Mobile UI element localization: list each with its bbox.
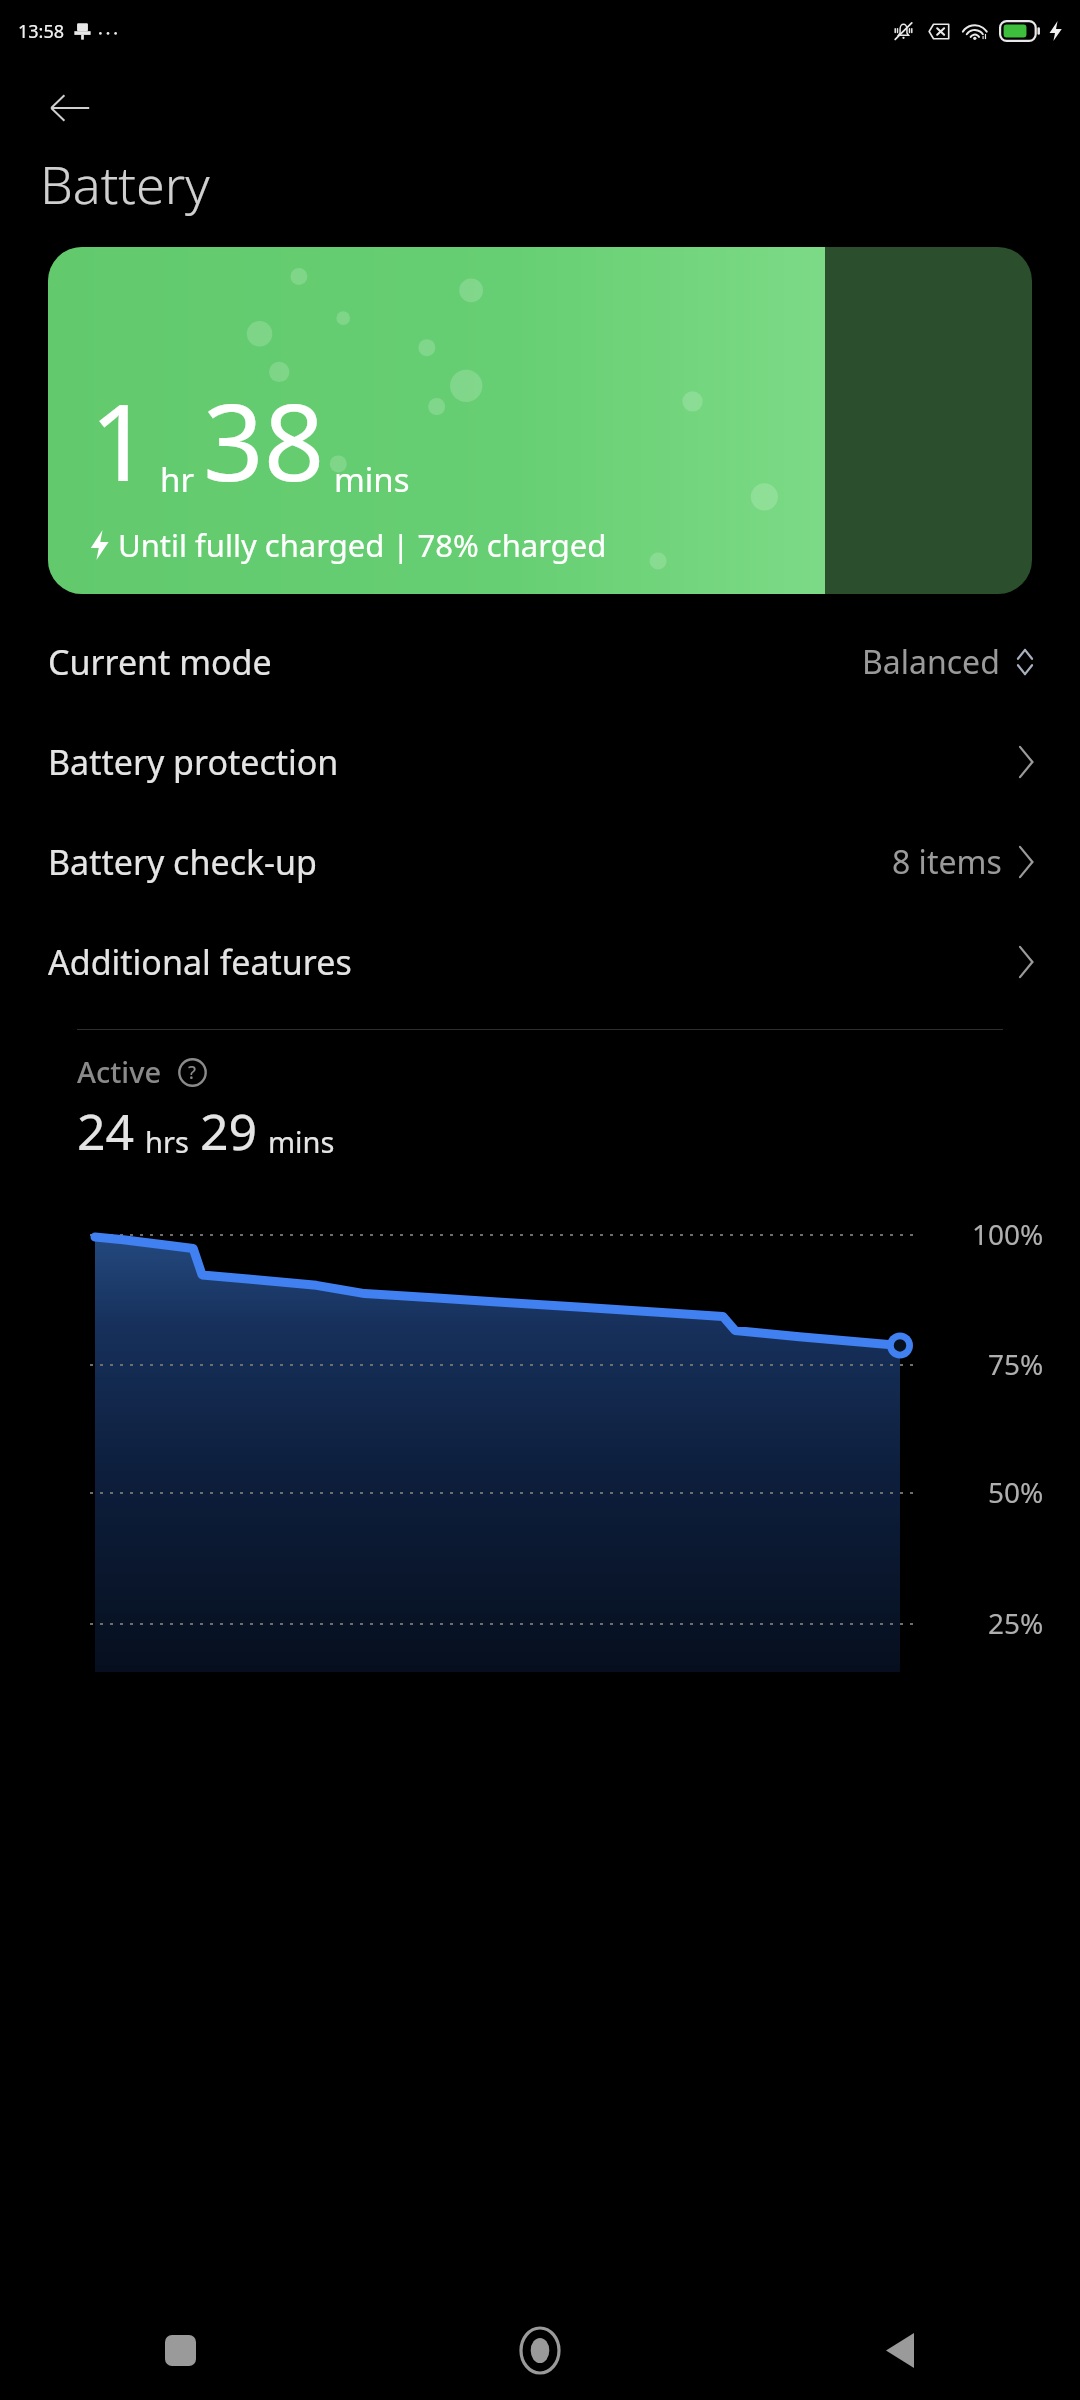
button[interactable]: Back bbox=[38, 76, 102, 140]
staticText: 8 items bbox=[892, 840, 1002, 884]
staticText: Balanced bbox=[862, 640, 1000, 684]
staticText: 29 bbox=[200, 1097, 258, 1165]
staticText: 75% bbox=[988, 1345, 1044, 1383]
staticText: Battery protection bbox=[48, 739, 339, 785]
button[interactable]: Additional features bbox=[0, 912, 1080, 1012]
staticText: mins bbox=[334, 457, 410, 502]
staticText: 50% bbox=[988, 1473, 1044, 1511]
staticText: 38 bbox=[203, 368, 325, 512]
button[interactable]: Back bbox=[720, 2300, 1080, 2400]
staticText: Current mode bbox=[48, 639, 272, 685]
button[interactable]: Current mode bbox=[0, 612, 1080, 712]
button[interactable]: Recent apps bbox=[0, 2300, 360, 2400]
staticText: ? bbox=[188, 1060, 197, 1085]
staticText: Active bbox=[77, 1052, 162, 1091]
staticText: Until fully charged | 78% charged bbox=[118, 524, 607, 566]
staticText: 13:58 bbox=[18, 19, 65, 44]
staticText: Battery bbox=[40, 148, 210, 219]
staticText: 24 bbox=[77, 1097, 135, 1165]
staticText: hrs bbox=[145, 1122, 189, 1161]
staticText: Battery check-up bbox=[48, 839, 317, 885]
button[interactable]: Battery protection bbox=[0, 712, 1080, 812]
staticText: 25% bbox=[988, 1604, 1044, 1642]
button[interactable]: Home bbox=[360, 2300, 720, 2400]
staticText: 1 bbox=[90, 368, 151, 512]
staticText: 100% bbox=[972, 1215, 1044, 1253]
staticText: mins bbox=[268, 1122, 335, 1161]
button[interactable]: Battery check-up bbox=[0, 812, 1080, 912]
button[interactable]: Help about active time bbox=[174, 1054, 210, 1090]
button[interactable]: 1 bbox=[48, 247, 1032, 594]
staticText: hr bbox=[160, 457, 195, 502]
staticText: Additional features bbox=[48, 939, 352, 985]
